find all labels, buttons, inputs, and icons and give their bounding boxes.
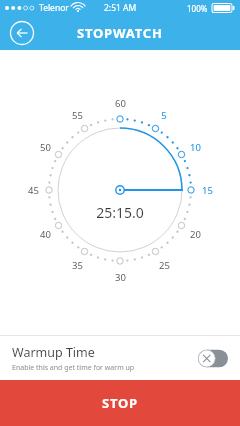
staticText: 60 bbox=[115, 97, 126, 110]
staticText: 35 bbox=[72, 259, 83, 272]
staticText: 2:51 AM bbox=[104, 2, 137, 14]
staticText: 45 bbox=[28, 184, 39, 197]
staticText: STOP bbox=[102, 394, 138, 412]
staticText: Warmup Time bbox=[12, 344, 95, 361]
staticText: 100% bbox=[187, 3, 208, 14]
staticText: 30 bbox=[115, 271, 126, 284]
staticText: Telenor bbox=[39, 2, 69, 14]
staticText: 10 bbox=[190, 141, 201, 154]
staticText: 40 bbox=[40, 228, 51, 241]
staticText: 5 bbox=[161, 109, 167, 122]
button[interactable]: Back bbox=[8, 19, 36, 47]
staticText: 20 bbox=[190, 228, 201, 241]
staticText: 15 bbox=[202, 184, 213, 197]
staticText: 25 bbox=[159, 259, 170, 272]
button[interactable]: Toggle warmup time bbox=[198, 349, 228, 368]
staticText: 55 bbox=[72, 109, 83, 122]
button[interactable]: Warmup Time bbox=[0, 336, 240, 380]
staticText: 50 bbox=[40, 141, 51, 154]
button[interactable]: STOP bbox=[0, 380, 240, 426]
staticText: STOPWATCH bbox=[77, 24, 163, 42]
staticText: Enable this and get time for warm up bbox=[12, 363, 135, 373]
staticText: 25:15.0 bbox=[96, 203, 144, 222]
